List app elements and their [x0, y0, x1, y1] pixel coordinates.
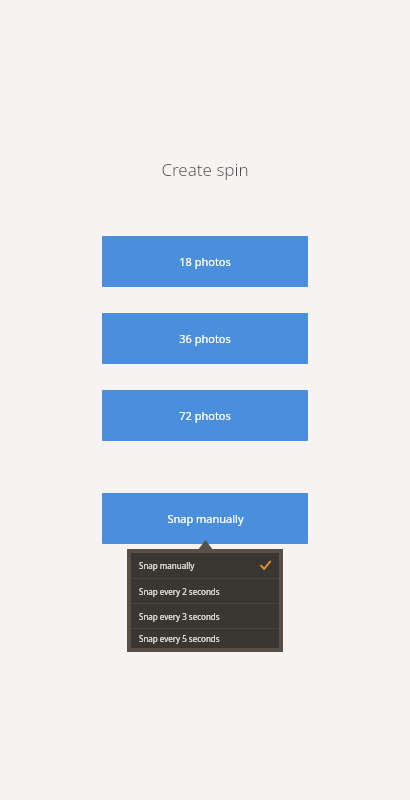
button[interactable]: Snap manually [131, 553, 279, 578]
staticText: 72 photos [179, 408, 231, 423]
staticText: Snap every 2 seconds [139, 586, 220, 597]
button[interactable]: Snap every 5 seconds [131, 629, 279, 648]
button[interactable]: 72 photos [102, 390, 308, 441]
staticText: Snap every 5 seconds [139, 633, 220, 644]
staticText: Snap every 3 seconds [139, 611, 220, 622]
staticText: Snap manually [167, 511, 244, 526]
staticText: Snap manually [139, 560, 195, 571]
other: Selected [260, 560, 271, 571]
button[interactable]: Snap every 3 seconds [131, 604, 279, 628]
button[interactable]: Snap manually [102, 493, 308, 544]
staticText: 36 photos [179, 331, 231, 346]
staticText: 18 photos [179, 254, 231, 269]
button[interactable]: 18 photos [102, 236, 308, 287]
button[interactable]: 36 photos [102, 313, 308, 364]
button[interactable]: Snap every 2 seconds [131, 579, 279, 603]
staticText: Create spin [161, 158, 249, 181]
